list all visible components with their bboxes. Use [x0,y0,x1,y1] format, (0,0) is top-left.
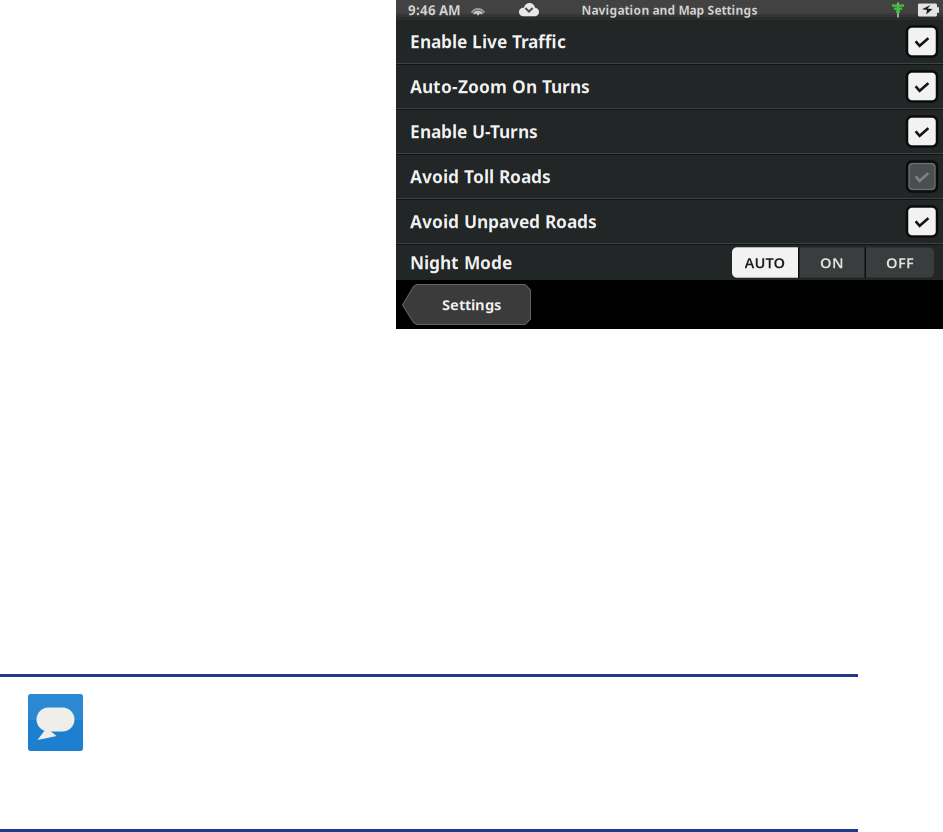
button[interactable]: Enable U-Turns [396,110,943,153]
staticText: Avoid Unpaved Roads [410,210,597,233]
staticText: Navigation and Map Settings [581,2,757,18]
button[interactable]: Comments [28,694,83,751]
staticText: OFF [886,253,914,272]
button[interactable]: AUTO [732,247,798,278]
staticText: Avoid Toll Roads [410,165,551,188]
staticText: ON [820,253,844,272]
staticText: Night Mode [410,251,512,274]
staticText: Settings [442,295,501,314]
button[interactable]: ON [799,247,864,278]
button[interactable]: Avoid Unpaved Roads [396,200,943,243]
button[interactable]: Auto-Zoom On Turns [396,65,943,108]
staticText: Enable U-Turns [410,120,538,143]
button[interactable]: Enable Live Traffic [396,20,943,63]
staticText: 9:46 AM [408,1,461,19]
button[interactable]: Avoid Toll Roads [396,155,943,198]
button[interactable]: OFF [866,247,934,278]
staticText: Auto-Zoom On Turns [410,75,590,98]
button[interactable]: Settings [402,284,531,325]
staticText: Enable Live Traffic [410,30,566,53]
staticText: AUTO [744,253,785,272]
